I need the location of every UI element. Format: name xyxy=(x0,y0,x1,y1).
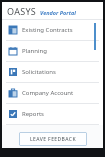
button[interactable]: Solicitations xyxy=(2,62,103,82)
staticText: Company Account xyxy=(22,89,74,97)
staticText: Existing Contracts xyxy=(22,26,73,34)
button[interactable]: Company Account xyxy=(2,83,103,103)
staticText: LEAVE FEEDBACK xyxy=(30,136,76,143)
button[interactable]: Planning xyxy=(2,41,103,61)
staticText: Solicitations xyxy=(22,68,56,76)
button[interactable]: OASYS xyxy=(2,2,103,19)
button[interactable]: Existing Contracts xyxy=(2,20,103,40)
button[interactable]: Reports xyxy=(2,104,103,124)
staticText: Vendor Portal xyxy=(40,9,76,16)
staticText: Planning xyxy=(22,47,47,55)
staticText: Reports xyxy=(22,110,44,118)
button[interactable]: LEAVE FEEDBACK xyxy=(19,132,87,146)
staticText: OASYS xyxy=(7,5,37,17)
